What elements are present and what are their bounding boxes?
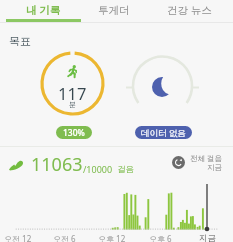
staticText: 지금 [199, 233, 216, 242]
staticText: 투게더 [98, 4, 130, 17]
staticText: 걸음 [117, 164, 134, 175]
staticText: 오후 12 [98, 233, 126, 242]
button[interactable]: 130% [56, 126, 92, 139]
button[interactable]: 전체 걸음 새로고침 [172, 153, 222, 172]
other: 전체 걸음 새로고침 [172, 156, 185, 169]
staticText: 목표 [9, 34, 31, 48]
button[interactable]: 데이터 없음 [135, 126, 192, 139]
staticText: 117 [58, 82, 87, 104]
staticText: 오후 6 [149, 233, 172, 242]
staticText: 건강 뉴스 [167, 3, 212, 17]
button[interactable]: 투게더 [81, 1, 147, 19]
staticText: 내 기록 [26, 3, 61, 17]
staticText: 130% [63, 127, 85, 139]
staticText: /10000 [83, 163, 113, 175]
staticText: 지금 [207, 163, 222, 172]
staticText: 오전 6 [53, 233, 76, 242]
button[interactable]: 내 기록 [6, 1, 81, 19]
staticText: 오전 12 [4, 233, 32, 242]
staticText: 11063 [31, 152, 83, 177]
staticText: 분 [69, 100, 76, 109]
staticText: 전체 걸음 [190, 153, 222, 163]
staticText: 데이터 없음 [141, 127, 186, 139]
button[interactable]: 건강 뉴스 [147, 1, 231, 19]
